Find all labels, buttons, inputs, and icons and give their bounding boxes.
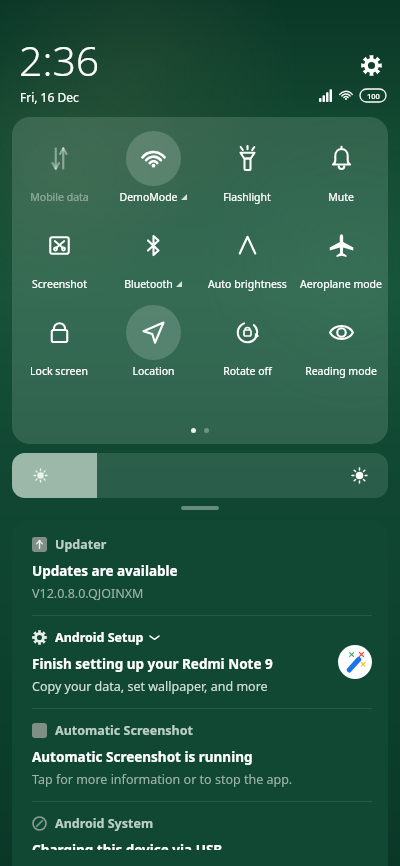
button[interactable]: Lock screen (12, 305, 106, 378)
staticText: Updater (55, 536, 107, 553)
staticText: Android System (55, 815, 154, 832)
button[interactable]: Location (106, 305, 200, 378)
staticText: Mute (328, 190, 354, 204)
button[interactable]: Flashlight (200, 131, 294, 204)
staticText: Aeroplane mode (300, 277, 382, 291)
staticText: Automatic Screenshot (55, 722, 193, 739)
staticText: Fri, 16 Dec (20, 89, 79, 105)
staticText: Mobile data (30, 190, 89, 204)
button[interactable]: DemoMode (106, 131, 200, 204)
button[interactable]: Screenshot (12, 218, 106, 291)
staticText: Auto brightness (208, 277, 287, 291)
staticText: Finish setting up your Redmi Note 9 (32, 655, 273, 673)
button[interactable]: Mute (294, 131, 388, 204)
staticText: Bluetooth (124, 277, 173, 291)
button[interactable]: Automatic Screenshot (12, 709, 388, 801)
staticText: Reading mode (305, 364, 377, 378)
staticText: 2:36 (19, 32, 100, 88)
staticText: Android Setup (55, 629, 144, 646)
button[interactable]: Reading mode (294, 305, 388, 378)
staticText: Copy your data, set wallpaper, and more (32, 678, 268, 695)
button[interactable]: Settings (355, 49, 387, 81)
staticText: Location (132, 364, 175, 378)
staticText: Flashlight (223, 190, 271, 204)
staticText: Charging this device via USB (32, 841, 223, 850)
button[interactable]: Auto brightness (200, 218, 294, 291)
button[interactable]: Bluetooth (106, 218, 200, 291)
button[interactable]: Rotate off (200, 305, 294, 378)
button[interactable]: Aeroplane mode (294, 218, 388, 291)
button[interactable]: Brightness (12, 453, 388, 498)
staticText: Rotate off (223, 364, 272, 378)
button[interactable]: Android Setup (12, 616, 388, 708)
staticText: Updates are available (32, 562, 178, 580)
staticText: V12.0.8.0.QJOINXM (32, 585, 144, 602)
staticText: Automatic Screenshot is running (32, 748, 253, 766)
staticText: Lock screen (30, 364, 88, 378)
staticText: DemoMode (119, 190, 178, 204)
button[interactable]: Updater (12, 520, 388, 615)
staticText: Tap for more information or to stop the … (32, 771, 293, 788)
button[interactable]: Mobile data (12, 131, 106, 204)
staticText: Screenshot (32, 277, 87, 291)
button[interactable]: Android System (12, 802, 388, 866)
staticText: 100 (367, 91, 380, 101)
